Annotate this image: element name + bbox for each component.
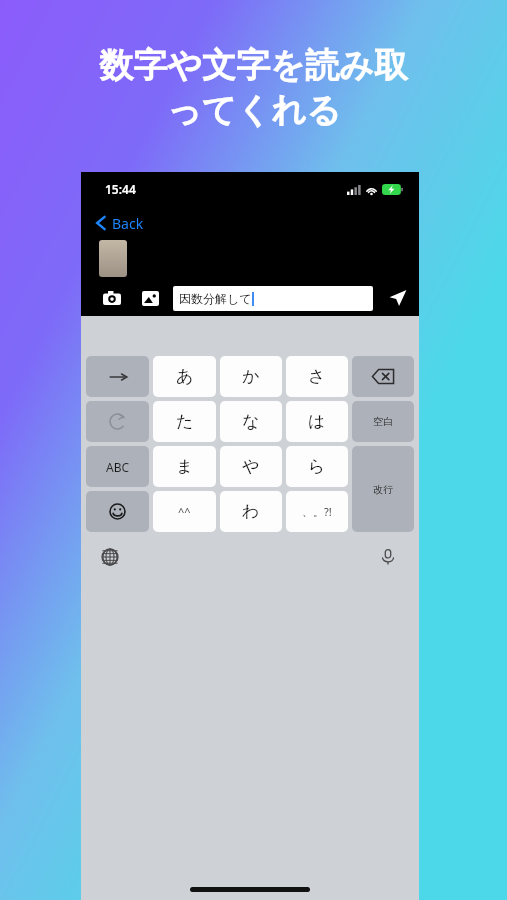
- button[interactable]: Change keyboard: [95, 542, 125, 572]
- staticText: わ: [242, 501, 260, 522]
- button[interactable]: あ: [153, 356, 216, 397]
- staticText: 数字や文字を読み取: [99, 44, 408, 87]
- button[interactable]: 空白: [352, 401, 414, 442]
- button[interactable]: ^^: [153, 491, 216, 532]
- button[interactable]: や: [220, 446, 282, 487]
- button[interactable]: Back: [81, 206, 419, 240]
- staticText: や: [242, 456, 260, 477]
- button[interactable]: Camera: [99, 285, 125, 311]
- button[interactable]: か: [220, 356, 282, 397]
- button[interactable]: ま: [153, 446, 216, 487]
- staticText: ら: [308, 456, 326, 477]
- staticText: ^^: [178, 504, 191, 519]
- button[interactable]: ABC: [86, 446, 149, 487]
- staticText: 空白: [373, 415, 393, 428]
- button[interactable]: Send: [381, 281, 415, 315]
- staticText: 、。?!: [302, 504, 332, 519]
- button[interactable]: Attached image: [99, 240, 127, 277]
- staticText: Back: [112, 214, 144, 233]
- button[interactable]: ☺: [86, 491, 149, 532]
- button[interactable]: わ: [220, 491, 282, 532]
- staticText: ま: [176, 456, 194, 477]
- button[interactable]: ↺: [86, 401, 149, 442]
- staticText: 15:44: [105, 181, 136, 197]
- staticText: 因数分解して: [179, 291, 252, 306]
- staticText: か: [242, 366, 260, 387]
- button[interactable]: ⌫: [352, 356, 414, 397]
- button[interactable]: ら: [286, 446, 348, 487]
- button[interactable]: は: [286, 401, 348, 442]
- button[interactable]: Photos: [137, 285, 163, 311]
- staticText: は: [308, 411, 326, 432]
- button[interactable]: な: [220, 401, 282, 442]
- button[interactable]: た: [153, 401, 216, 442]
- staticText: な: [242, 411, 260, 432]
- button[interactable]: 、。?!: [286, 491, 348, 532]
- staticText: ってくれる: [167, 89, 341, 132]
- button[interactable]: →: [86, 356, 149, 397]
- staticText: あ: [176, 366, 194, 387]
- staticText: ABC: [106, 459, 130, 475]
- staticText: さ: [308, 366, 326, 387]
- staticText: た: [176, 411, 194, 432]
- button[interactable]: Dictation: [373, 542, 403, 572]
- button[interactable]: さ: [286, 356, 348, 397]
- button[interactable]: 因数分解して: [173, 286, 373, 311]
- button[interactable]: 改行: [352, 446, 414, 532]
- staticText: 改行: [373, 483, 393, 496]
